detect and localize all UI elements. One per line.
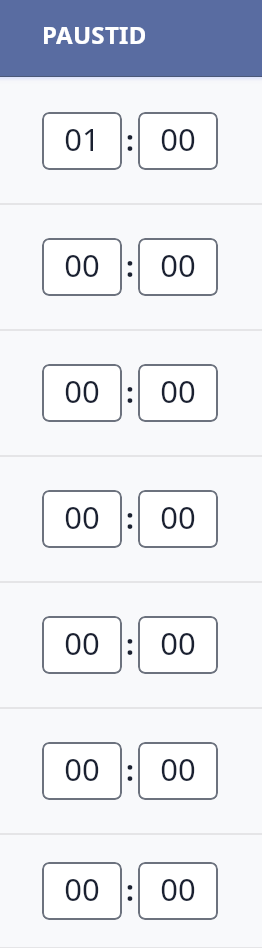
staticText: 00 xyxy=(64,868,100,910)
staticText: 00 xyxy=(160,868,196,910)
button[interactable]: 00 xyxy=(138,742,218,800)
staticText: 01 xyxy=(64,118,100,160)
staticText: : xyxy=(126,121,134,159)
staticText: 00 xyxy=(160,622,196,664)
staticText: 00 xyxy=(160,370,196,412)
button[interactable]: 00 xyxy=(138,238,218,296)
button[interactable]: 00 xyxy=(42,364,122,422)
staticText: 00 xyxy=(160,748,196,790)
staticText: 00 xyxy=(160,496,196,538)
staticText: 00 xyxy=(64,622,100,664)
staticText: 00 xyxy=(64,496,100,538)
button[interactable]: 00 xyxy=(42,742,122,800)
staticText: : xyxy=(126,373,134,411)
button[interactable]: 00 xyxy=(138,616,218,674)
staticText: 00 xyxy=(160,244,196,286)
button[interactable]: 00 xyxy=(42,490,122,548)
button[interactable]: 00 xyxy=(138,862,218,920)
button[interactable]: 00 xyxy=(138,364,218,422)
staticText: PAUSTID xyxy=(42,18,147,51)
staticText: : xyxy=(126,871,134,909)
button[interactable]: 00 xyxy=(138,112,218,170)
staticText: 00 xyxy=(160,118,196,160)
button[interactable]: 00 xyxy=(42,238,122,296)
staticText: 00 xyxy=(64,748,100,790)
staticText: 00 xyxy=(64,370,100,412)
button[interactable]: 00 xyxy=(42,862,122,920)
button[interactable]: 00 xyxy=(138,490,218,548)
staticText: 00 xyxy=(64,244,100,286)
button[interactable]: 01 xyxy=(42,112,122,170)
staticText: : xyxy=(126,625,134,663)
staticText: : xyxy=(126,751,134,789)
staticText: : xyxy=(126,247,134,285)
button[interactable]: 00 xyxy=(42,616,122,674)
staticText: : xyxy=(126,499,134,537)
